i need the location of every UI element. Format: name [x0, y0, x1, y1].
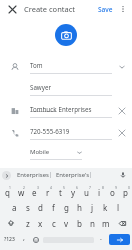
staticText: 4 — [50, 185, 52, 189]
button[interactable]: j — [86, 199, 99, 215]
button[interactable]: Shift — [0, 215, 21, 231]
button[interactable]: Space — [42, 231, 95, 248]
staticText: z — [26, 218, 30, 229]
button[interactable]: z — [21, 215, 34, 231]
staticText: w — [18, 187, 25, 198]
staticText: d — [38, 202, 43, 213]
staticText: Tom — [30, 61, 43, 69]
button[interactable]: a — [8, 199, 21, 215]
staticText: Sawyer — [30, 83, 51, 91]
button[interactable]: Clear company — [115, 104, 129, 118]
staticText: 7 — [89, 185, 91, 189]
staticText: 5 — [63, 185, 65, 189]
button[interactable]: b — [73, 215, 86, 231]
staticText: g — [64, 202, 69, 213]
button[interactable]: x — [34, 215, 47, 231]
staticText: j — [91, 202, 94, 213]
button[interactable]: 3 — [28, 183, 41, 199]
button[interactable]: 720-555-6319 — [0, 122, 132, 144]
button[interactable]: c — [47, 215, 60, 231]
staticText: t — [59, 187, 62, 198]
staticText: b — [77, 218, 82, 229]
button[interactable]: v — [60, 215, 73, 231]
button[interactable]: Enterprise's — [53, 168, 93, 182]
staticText: Enterprise's — [56, 171, 90, 179]
button[interactable]: 6 — [67, 183, 80, 199]
button[interactable]: Save — [96, 3, 115, 16]
button[interactable]: 0 — [119, 183, 132, 199]
button[interactable]: Clear phone — [115, 126, 129, 140]
staticText: ?123 — [4, 236, 15, 243]
staticText: s — [26, 202, 30, 213]
staticText: e — [32, 187, 37, 198]
button[interactable]: Enterprises — [14, 168, 52, 182]
staticText: c — [52, 218, 56, 229]
staticText: o — [110, 187, 115, 198]
button[interactable]: l — [112, 199, 125, 215]
button[interactable]: g — [60, 199, 73, 215]
button[interactable]: . — [95, 231, 107, 248]
staticText: x — [38, 218, 43, 229]
button[interactable]: Tomhuck — [0, 100, 132, 122]
staticText: h — [77, 202, 82, 213]
button[interactable]: 2 — [14, 183, 28, 199]
button[interactable]: , — [18, 231, 30, 248]
staticText: 2 — [23, 185, 25, 189]
button[interactable]: 8 — [93, 183, 106, 199]
staticText: Enterprises — [17, 171, 49, 179]
staticText: 0 — [128, 185, 130, 189]
staticText: 6 — [76, 185, 78, 189]
button[interactable]: 7 — [80, 183, 93, 199]
staticText: a — [12, 202, 17, 213]
button[interactable]: Sawyer — [0, 78, 132, 100]
button[interactable]: Backspace — [112, 215, 132, 231]
button[interactable]: d — [34, 199, 47, 215]
staticText: Enterprises — [57, 105, 92, 113]
staticText: 8 — [102, 185, 104, 189]
button[interactable]: n — [86, 215, 99, 231]
staticText: Mobile — [30, 148, 50, 156]
staticText: i — [98, 187, 101, 198]
button[interactable]: f — [47, 199, 60, 215]
staticText: m — [102, 218, 110, 229]
staticText: u — [84, 187, 89, 198]
staticText: Save — [98, 5, 113, 14]
staticText: k — [103, 202, 108, 213]
button[interactable]: Tom — [0, 56, 132, 78]
button[interactable]: m — [99, 215, 112, 231]
button[interactable]: More options — [115, 1, 131, 17]
staticText: . — [100, 233, 102, 243]
staticText: n — [90, 218, 95, 229]
button[interactable]: k — [99, 199, 112, 215]
button[interactable]: Expand name fields — [115, 60, 129, 74]
staticText: q — [5, 187, 10, 198]
staticText: 9 — [115, 185, 117, 189]
button[interactable]: 1 — [0, 183, 14, 199]
button[interactable]: h — [73, 199, 86, 215]
staticText: 1 — [9, 185, 11, 189]
button[interactable]: Expand suggestions — [2, 171, 11, 180]
staticText: r — [46, 187, 50, 198]
button[interactable]: Close — [3, 0, 21, 18]
button[interactable]: s — [21, 199, 34, 215]
button[interactable]: Emoji — [30, 231, 42, 248]
button[interactable]: 4 — [41, 183, 54, 199]
button[interactable]: Mobile — [0, 144, 132, 164]
button[interactable]: 9 — [106, 183, 119, 199]
staticText: Create contact — [24, 4, 76, 14]
button[interactable]: Voice input — [117, 169, 129, 181]
staticText: y — [71, 187, 76, 198]
button[interactable]: ?123 — [0, 231, 18, 248]
button[interactable]: Enter — [109, 234, 130, 245]
button[interactable]: Add photo — [55, 24, 77, 46]
staticText: , — [23, 233, 25, 243]
staticText: l — [117, 202, 120, 213]
staticText: f — [52, 202, 55, 213]
staticText: p — [123, 187, 128, 198]
staticText: 3 — [37, 185, 39, 189]
staticText: Tomhuck — [30, 105, 57, 113]
staticText: 720-555-6319 — [30, 127, 70, 135]
staticText: v — [64, 218, 69, 229]
button[interactable]: 5 — [54, 183, 67, 199]
